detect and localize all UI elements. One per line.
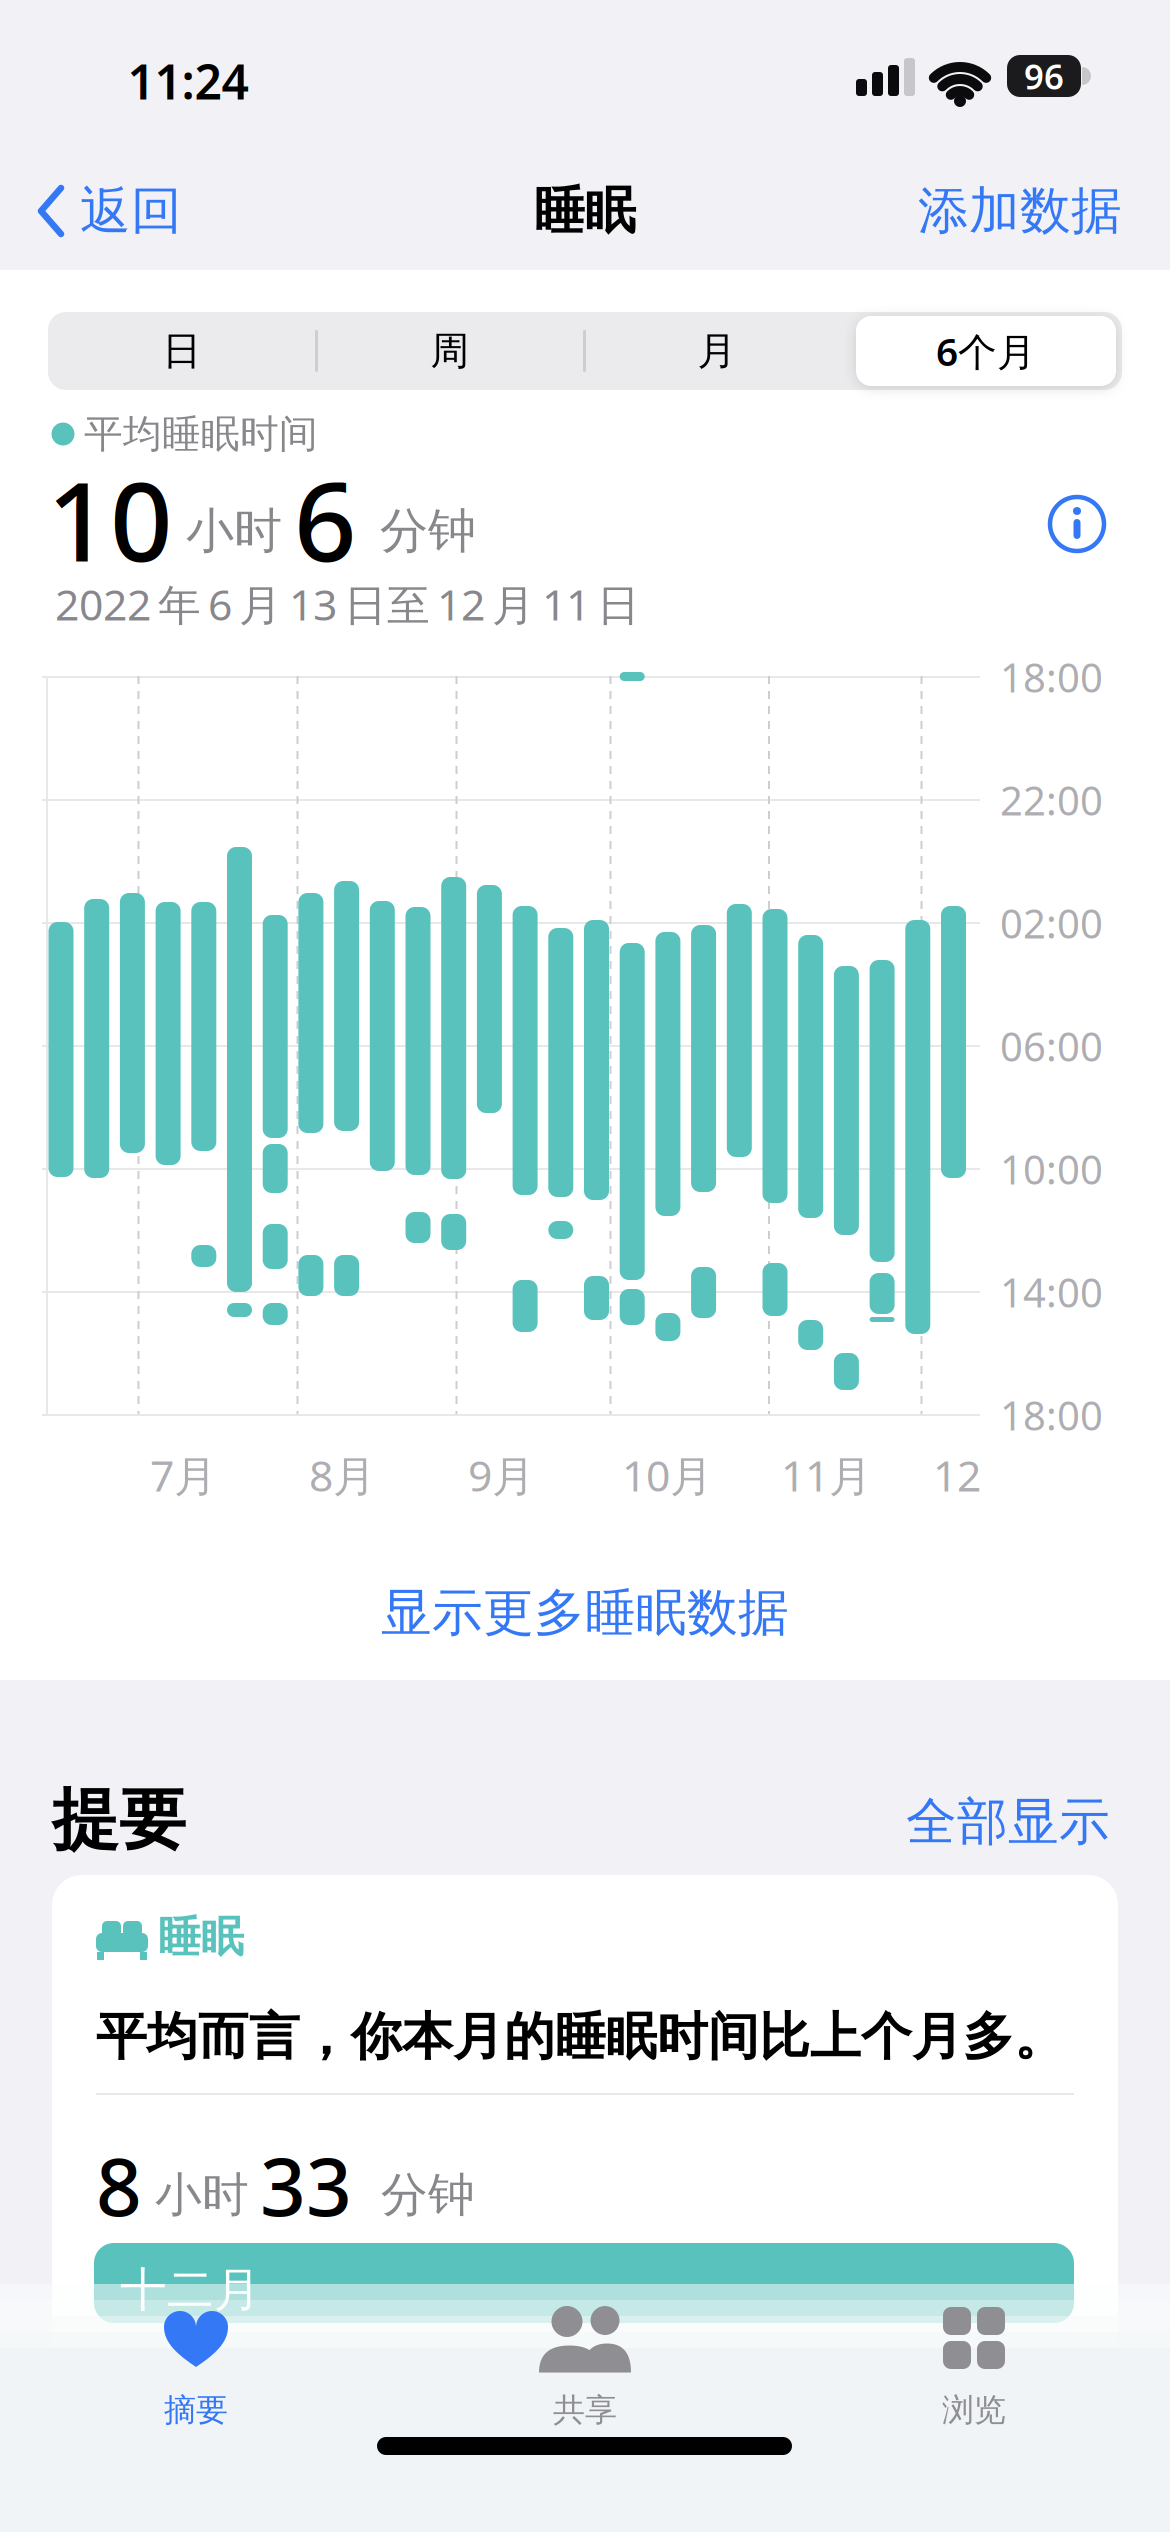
staticText: 返回 (80, 180, 182, 242)
staticText: 共享 (553, 2390, 617, 2430)
button[interactable]: 全部显示 (790, 1791, 1110, 1853)
button[interactable]: 月 (585, 312, 849, 390)
staticText: 2022 年 6 月 13 日至 12 月 11 日 (55, 576, 640, 632)
staticText: 分钟 (380, 501, 476, 560)
staticText: 6 (294, 446, 357, 592)
staticText: 提要 (52, 1779, 186, 1861)
staticText: 睡眠 (158, 1911, 244, 1963)
staticText: 小时 (186, 501, 282, 560)
staticText: 33 (260, 2132, 352, 2238)
button[interactable] (1048, 495, 1106, 553)
staticText: 02:00 (1000, 896, 1103, 949)
button[interactable]: 添加数据 (782, 180, 1122, 242)
button[interactable]: 浏览 (889, 2291, 1059, 2431)
button[interactable]: 睡眠 (52, 1875, 1118, 2532)
staticText: 6个月 (936, 325, 1036, 377)
staticText: 平均而言，你本月的睡眠时间比上个月多。 (96, 2006, 1065, 2068)
staticText: 7月 (150, 1447, 217, 1503)
staticText: 浏览 (942, 2390, 1006, 2430)
staticText: 14:00 (1000, 1265, 1103, 1318)
button[interactable]: 周 (318, 312, 582, 390)
staticText: 9月 (468, 1447, 535, 1503)
button[interactable]: 6个月 (856, 316, 1116, 386)
staticText: 11:24 (127, 49, 248, 113)
staticText: 平均睡眠时间 (84, 410, 318, 458)
staticText: 12 (933, 1447, 981, 1503)
staticText: 18:00 (1000, 1388, 1103, 1441)
staticText: 全部显示 (906, 1791, 1110, 1853)
staticText: 分钟 (381, 2166, 475, 2224)
staticText: 小时 (155, 2166, 249, 2224)
staticText: 10:00 (1000, 1142, 1103, 1195)
staticText: 十二月 (120, 2261, 261, 2319)
button[interactable]: 日 (50, 312, 314, 390)
staticText: 8 (96, 2132, 142, 2238)
staticText: 18:00 (1000, 650, 1103, 703)
staticText: 摘要 (164, 2390, 228, 2430)
staticText: 显示更多睡眠数据 (381, 1582, 789, 1644)
staticText: 22:00 (1000, 773, 1103, 826)
staticText: 96 (1024, 53, 1064, 99)
staticText: 月 (697, 327, 736, 375)
staticText: 8月 (309, 1447, 376, 1503)
button[interactable]: 显示更多睡眠数据 (381, 1582, 789, 1644)
button[interactable]: 共享 (500, 2291, 670, 2431)
staticText: 06:00 (1000, 1019, 1103, 1072)
button[interactable]: 摘要 (111, 2291, 281, 2431)
staticText: 周 (430, 327, 469, 375)
staticText: 11月 (781, 1447, 872, 1503)
staticText: 睡眠 (534, 180, 636, 242)
staticText: 10 (47, 446, 173, 592)
staticText: 10月 (622, 1447, 713, 1503)
button[interactable]: 返回 (38, 180, 182, 242)
staticText: 添加数据 (918, 180, 1122, 242)
staticText: 日 (162, 327, 201, 375)
